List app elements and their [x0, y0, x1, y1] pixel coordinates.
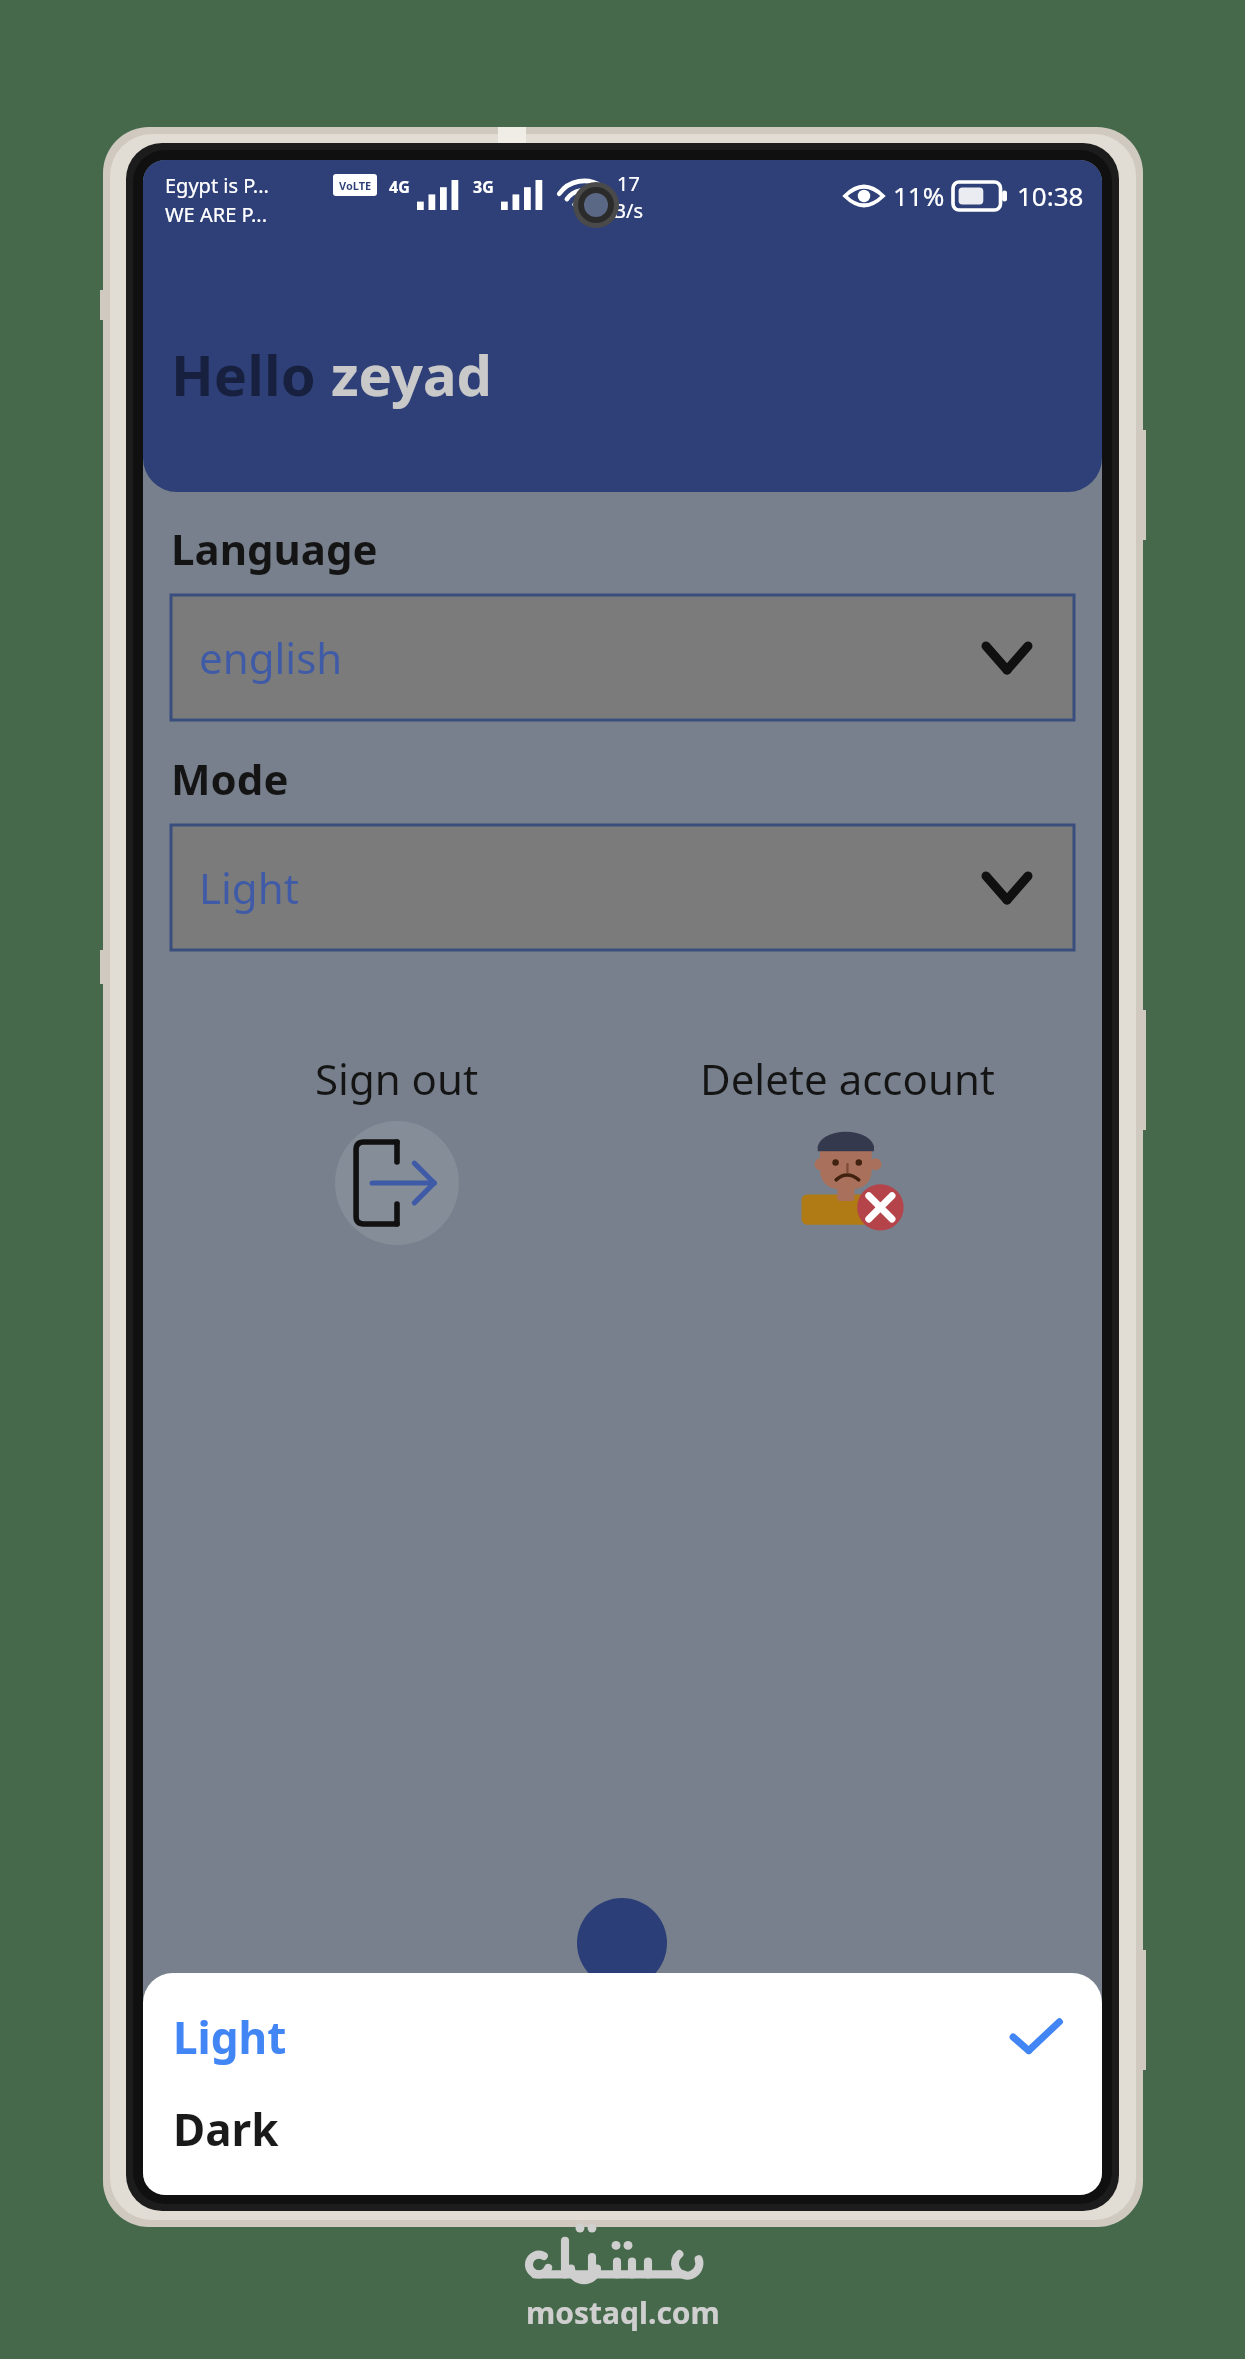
staticText: Hello — [171, 336, 331, 412]
staticText: Egypt is P... — [165, 172, 269, 199]
button[interactable]: Light — [171, 825, 1074, 950]
staticText: 3G — [473, 176, 494, 198]
other: Sign out — [335, 1121, 459, 1245]
button[interactable]: Light — [143, 1991, 1102, 2083]
staticText: 4G — [389, 176, 410, 198]
staticText: Delete account — [700, 1050, 996, 1107]
button[interactable]: Dark — [143, 2083, 1102, 2175]
staticText: Sign out — [315, 1050, 479, 1107]
staticText: english — [199, 629, 343, 686]
staticText: VoLTE — [339, 178, 372, 193]
button[interactable]: english — [171, 595, 1074, 720]
staticText: 10:38 — [1017, 178, 1084, 213]
button[interactable]: Delete account — [622, 1050, 1074, 1229]
staticText: WE ARE P... — [165, 201, 268, 228]
staticText: zeyad — [331, 336, 492, 412]
staticText: Dark — [173, 2099, 279, 2159]
staticText: mostaql.com — [526, 2292, 720, 2333]
staticText: 17 — [617, 170, 640, 197]
staticText: B/s — [613, 197, 644, 224]
button[interactable]: Sign out — [171, 1050, 622, 1245]
staticText: Language — [171, 520, 378, 577]
staticText: 11% — [893, 178, 945, 213]
staticText: Light — [199, 859, 299, 916]
other: Delete account — [794, 1121, 902, 1229]
staticText: Mode — [171, 750, 289, 807]
other: Add — [577, 1898, 667, 1988]
staticText: Light — [173, 2007, 287, 2067]
